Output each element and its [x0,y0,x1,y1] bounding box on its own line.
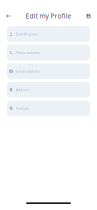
staticText: Edit my Profile [25,12,71,20]
button[interactable]: PinCode [7,101,90,116]
button[interactable]: Address [7,82,90,98]
staticText: Phone number [15,50,40,55]
button[interactable]: Back [2,9,14,23]
button[interactable]: Elon Muskan [7,26,90,42]
button[interactable]: Save [82,9,94,23]
button[interactable]: Email address [7,63,90,79]
button[interactable]: Phone number [7,45,90,60]
staticText: Email address [15,69,40,74]
staticText: Address [15,87,29,92]
staticText: Elon Muskan [15,31,37,37]
staticText: PinCode [15,106,28,111]
